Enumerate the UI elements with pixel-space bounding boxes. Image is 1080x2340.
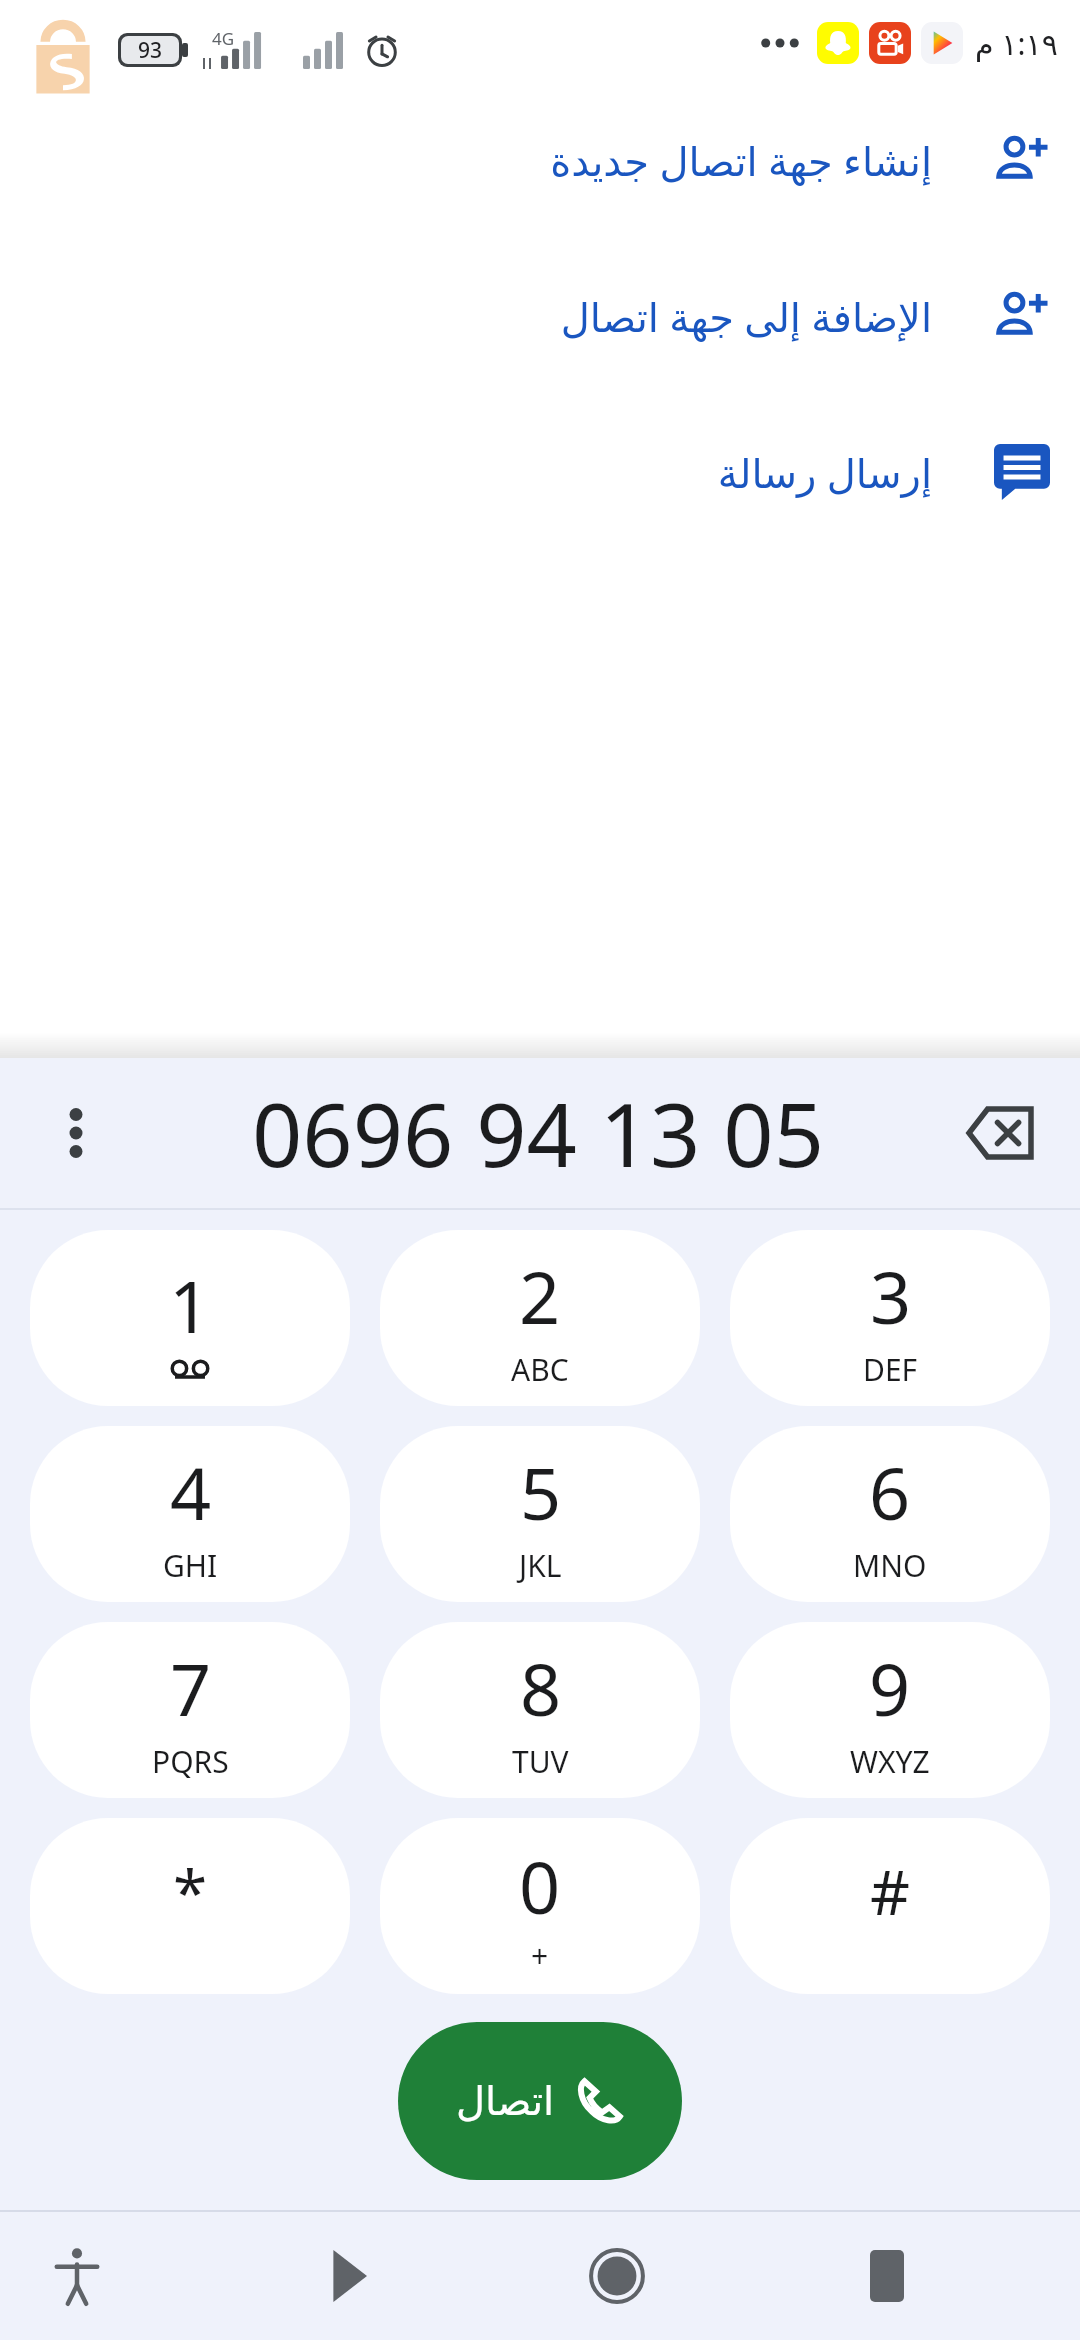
staticText: 0 (519, 1837, 561, 1935)
staticText: JKL (519, 1545, 562, 1586)
button[interactable]: More options (30, 1087, 122, 1179)
staticText: ABC (511, 1349, 569, 1390)
staticText: 7 (170, 1639, 212, 1737)
staticText: PQRS (152, 1741, 229, 1782)
button[interactable]: إنشاء جهة اتصال جديدة (0, 128, 1080, 192)
staticText: 5 (520, 1443, 562, 1541)
staticText: 0696 94 13 05 (252, 1073, 825, 1193)
staticText: إرسال رسالة (717, 445, 932, 499)
button[interactable]: Accessibility (0, 2212, 270, 2340)
button[interactable]: Recents (810, 2212, 1080, 2340)
button[interactable]: 4 (30, 1426, 350, 1602)
button[interactable]: 7 (30, 1622, 350, 1798)
button[interactable]: 0 (380, 1818, 700, 1994)
button[interactable]: Backspace (952, 1085, 1048, 1181)
staticText: 1 (169, 1256, 211, 1354)
staticText: WXYZ (850, 1741, 930, 1782)
button[interactable]: 6 (730, 1426, 1050, 1602)
staticText: DEF (863, 1349, 918, 1390)
button[interactable]: 8 (380, 1622, 700, 1798)
staticText: 2 (519, 1247, 561, 1345)
button[interactable]: الإضافة إلى جهة اتصال (0, 284, 1080, 348)
staticText: 4 (170, 1443, 212, 1541)
staticText: # (870, 1849, 911, 1933)
staticText: 4G (212, 27, 235, 50)
button[interactable]: 2 (380, 1230, 700, 1406)
staticText: ١:١٩ م (975, 23, 1058, 64)
staticText: إنشاء جهة اتصال جديدة (550, 133, 932, 187)
button[interactable]: 5 (380, 1426, 700, 1602)
staticText: + (531, 1935, 549, 1976)
button[interactable]: 9 (730, 1622, 1050, 1798)
button[interactable]: اتصال (398, 2022, 682, 2180)
staticText: اتصال (456, 2078, 555, 2125)
button[interactable]: Home (540, 2212, 810, 2340)
button[interactable]: 1 (30, 1230, 350, 1406)
button[interactable]: # (730, 1818, 1050, 1994)
button[interactable]: Back (270, 2212, 540, 2340)
staticText: TUV (512, 1741, 569, 1782)
staticText: MNO (853, 1545, 927, 1586)
button[interactable]: * (30, 1818, 350, 1994)
button[interactable]: إرسال رسالة (0, 440, 1080, 504)
staticText: * (173, 1849, 208, 1933)
button[interactable]: 3 (730, 1230, 1050, 1406)
staticText: 8 (520, 1639, 562, 1737)
staticText: 9 (869, 1639, 911, 1737)
staticText: الإضافة إلى جهة اتصال (560, 289, 932, 343)
staticText: 93 (138, 36, 163, 64)
staticText: 3 (870, 1247, 912, 1345)
staticText: 6 (869, 1443, 911, 1541)
staticText: GHI (163, 1545, 218, 1586)
